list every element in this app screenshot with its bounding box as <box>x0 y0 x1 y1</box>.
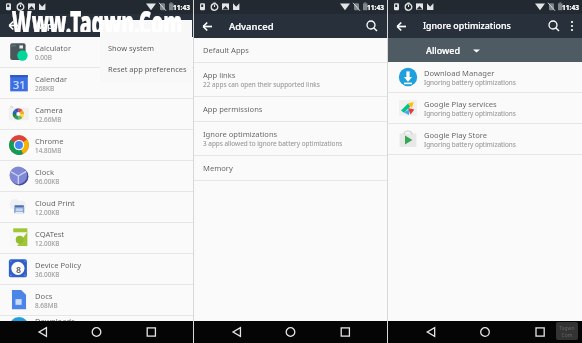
button[interactable]: More options <box>175 18 191 34</box>
staticText: Clock <box>35 167 55 177</box>
button[interactable]: App links <box>194 63 387 96</box>
button[interactable]: Search <box>155 16 175 36</box>
button[interactable]: Recents <box>323 321 387 343</box>
button[interactable]: Downloads <box>0 316 193 321</box>
staticText: Google Play Store <box>424 130 488 140</box>
button[interactable]: 31 <box>0 68 193 98</box>
button[interactable]: Reset app preferences <box>100 58 192 79</box>
staticText: Allowed <box>426 44 461 56</box>
staticText: 0.00B <box>35 53 52 62</box>
staticText: Downloads <box>35 316 75 321</box>
staticText: 11:43 <box>367 3 384 12</box>
button[interactable]: Search <box>361 15 383 37</box>
staticText: App permissions <box>203 104 263 114</box>
button[interactable]: Back <box>194 321 258 343</box>
button[interactable]: More options <box>564 18 580 34</box>
staticText: Ignoring battery optimizations <box>424 78 516 87</box>
staticText: Reset app preferences <box>108 64 187 74</box>
button[interactable]: 8 <box>0 254 193 284</box>
button[interactable]: Docs <box>0 285 193 315</box>
staticText: Default Apps <box>203 45 249 55</box>
staticText: Calculator <box>35 43 72 53</box>
staticText: Show system <box>108 43 154 53</box>
button[interactable]: App permissions <box>194 97 387 121</box>
staticText: Tagwn Com <box>559 325 575 338</box>
button[interactable]: Search <box>544 16 564 36</box>
staticText: 96.00KB <box>35 177 60 186</box>
button[interactable]: Cloud Print <box>0 192 193 222</box>
staticText: 12.00KB <box>35 208 60 217</box>
button[interactable]: Back <box>388 321 452 343</box>
button[interactable]: CQATest <box>0 223 193 253</box>
staticText: 22 apps can open their supported links <box>203 80 320 89</box>
staticText: Ignoring battery optimizations <box>424 109 516 118</box>
button[interactable]: Default Apps <box>194 38 387 62</box>
button[interactable]: Recents <box>129 321 193 343</box>
staticText: Ignoring battery optimizations <box>424 140 516 149</box>
staticText: Advanced <box>229 20 274 33</box>
staticText: Ignore optimizations <box>423 20 511 32</box>
staticText: Device Policy <box>35 260 82 270</box>
button[interactable]: Calculator <box>0 37 193 67</box>
button[interactable]: Recents <box>518 321 582 343</box>
staticText: Download Manager <box>424 68 495 78</box>
button[interactable]: Clock <box>0 161 193 191</box>
button[interactable]: Home <box>453 321 517 343</box>
staticText: Cloud Print <box>35 198 75 208</box>
staticText: 12.00KB <box>35 239 60 248</box>
staticText: Calendar <box>35 74 68 84</box>
staticText: Google Play services <box>424 99 497 109</box>
staticText: Chrome <box>35 136 64 146</box>
staticText: 8.68MB <box>35 301 58 310</box>
button[interactable]: Google Play services <box>388 93 582 123</box>
button[interactable]: Home <box>259 321 323 343</box>
button[interactable]: Memory <box>194 156 387 180</box>
button[interactable]: Allowed <box>388 38 582 62</box>
button[interactable]: Back <box>0 321 64 343</box>
staticText: 14.80MB <box>35 146 62 155</box>
staticText: 11:43 <box>562 3 579 12</box>
button[interactable]: Show system <box>100 37 192 58</box>
button[interactable]: Back <box>194 15 217 38</box>
button[interactable]: Google Play Store <box>388 124 582 154</box>
button[interactable]: Back <box>388 15 411 38</box>
staticText: Docs <box>35 291 53 301</box>
staticText: CQATest <box>35 229 65 239</box>
button[interactable]: Back <box>0 14 23 37</box>
staticText: Www.Tagwn.Com <box>12 0 183 32</box>
staticText: 8 <box>16 263 22 275</box>
staticText: Memory <box>203 163 233 173</box>
button[interactable]: Home <box>65 321 129 343</box>
button[interactable]: Chrome <box>0 130 193 160</box>
staticText: Camera <box>35 105 63 115</box>
staticText: 3 apps allowed to ignore battery optimiz… <box>203 139 343 148</box>
staticText: App links <box>203 70 236 80</box>
button[interactable]: Download Manager <box>388 62 582 92</box>
button[interactable]: Camera <box>0 99 193 129</box>
staticText: 268KB <box>35 84 55 93</box>
staticText: Ignore optimizations <box>203 129 278 139</box>
button[interactable]: Ignore optimizations <box>194 122 387 155</box>
staticText: Apps <box>35 19 58 32</box>
staticText: 31 <box>13 77 26 92</box>
staticText: 36.00KB <box>35 270 60 279</box>
staticText: 11:43 <box>173 3 190 12</box>
staticText: 12.66MB <box>35 115 62 124</box>
